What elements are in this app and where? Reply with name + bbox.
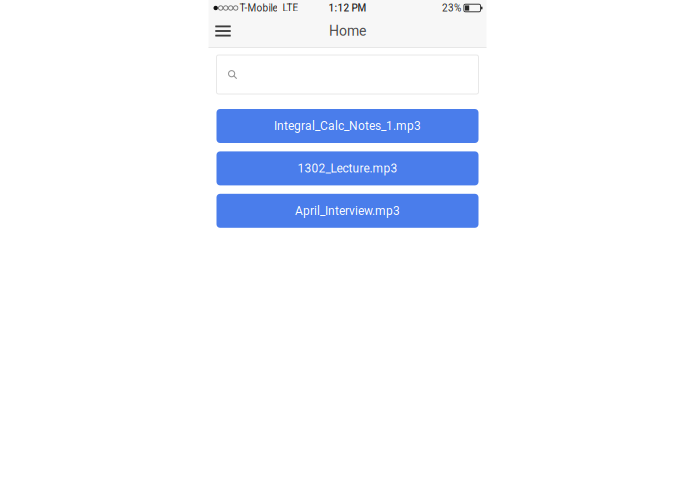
button[interactable]: Integral_Calc_Notes_1.mp3 (216, 109, 478, 143)
staticText: 1:12 PM (328, 2, 366, 14)
button[interactable]: April_Interview.mp3 (216, 194, 478, 228)
staticText: April_Interview.mp3 (295, 204, 400, 218)
staticText: Home (329, 23, 366, 39)
staticText: T-Mobile (239, 2, 277, 14)
staticText: 23% (442, 2, 461, 14)
staticText: 1302_Lecture.mp3 (297, 161, 397, 175)
staticText: LTE (282, 2, 298, 14)
staticText: Integral_Calc_Notes_1.mp3 (274, 119, 421, 133)
button[interactable]: 1302_Lecture.mp3 (216, 151, 478, 185)
button[interactable]: Search (216, 55, 478, 94)
button[interactable]: Menu (208, 16, 237, 48)
